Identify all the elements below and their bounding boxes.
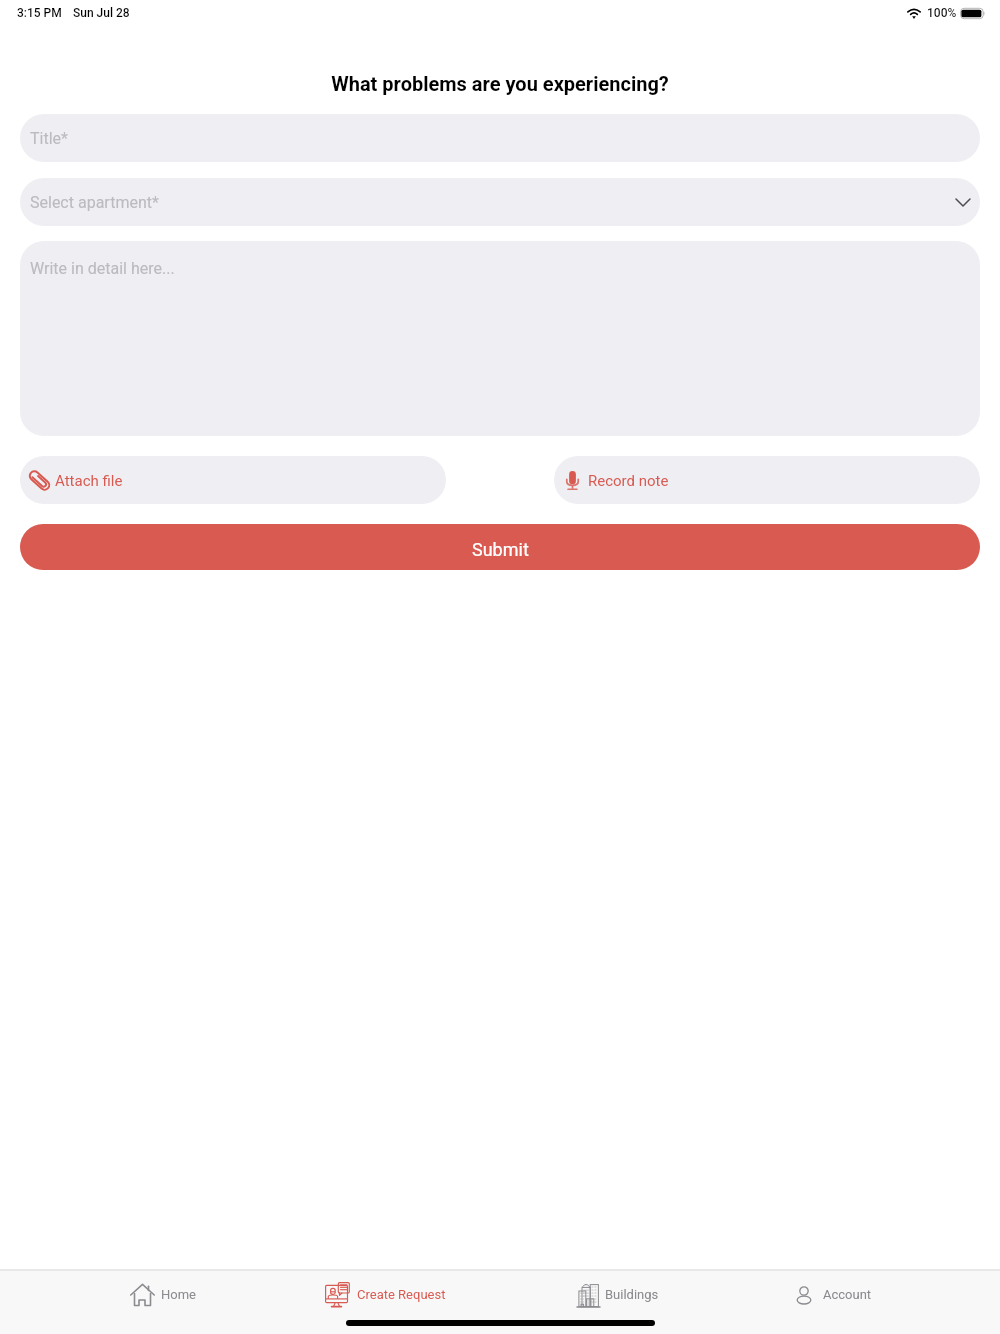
button[interactable]: Home bbox=[130, 1271, 196, 1319]
staticText: Account bbox=[823, 1287, 872, 1302]
staticText: 3:15 PM bbox=[17, 6, 62, 20]
staticText: Attach file bbox=[55, 472, 123, 490]
staticText: Create Request bbox=[357, 1287, 446, 1302]
staticText: 100% bbox=[927, 6, 957, 20]
other: Create Request bbox=[325, 1282, 351, 1308]
staticText: Sun Jul 28 bbox=[73, 6, 130, 20]
staticText: Submit bbox=[472, 539, 529, 560]
button[interactable]: Buildings bbox=[577, 1271, 659, 1319]
staticText: Home bbox=[161, 1287, 196, 1302]
button[interactable]: Select apartment* bbox=[20, 178, 980, 226]
button[interactable]: Create Request bbox=[325, 1271, 446, 1319]
staticText: Write in detail here... bbox=[30, 259, 175, 278]
staticText: What problems are you experiencing? bbox=[0, 72, 1000, 95]
button[interactable]: Account bbox=[793, 1271, 872, 1319]
button[interactable]: Record note bbox=[554, 456, 980, 504]
staticText: Buildings bbox=[605, 1287, 659, 1302]
staticText: Title* bbox=[30, 129, 68, 148]
staticText: Record note bbox=[588, 472, 669, 490]
button[interactable]: Submit bbox=[20, 524, 980, 570]
button[interactable]: Attach file bbox=[20, 456, 446, 504]
button[interactable]: Title* bbox=[20, 114, 980, 162]
staticText: Select apartment* bbox=[30, 193, 159, 212]
